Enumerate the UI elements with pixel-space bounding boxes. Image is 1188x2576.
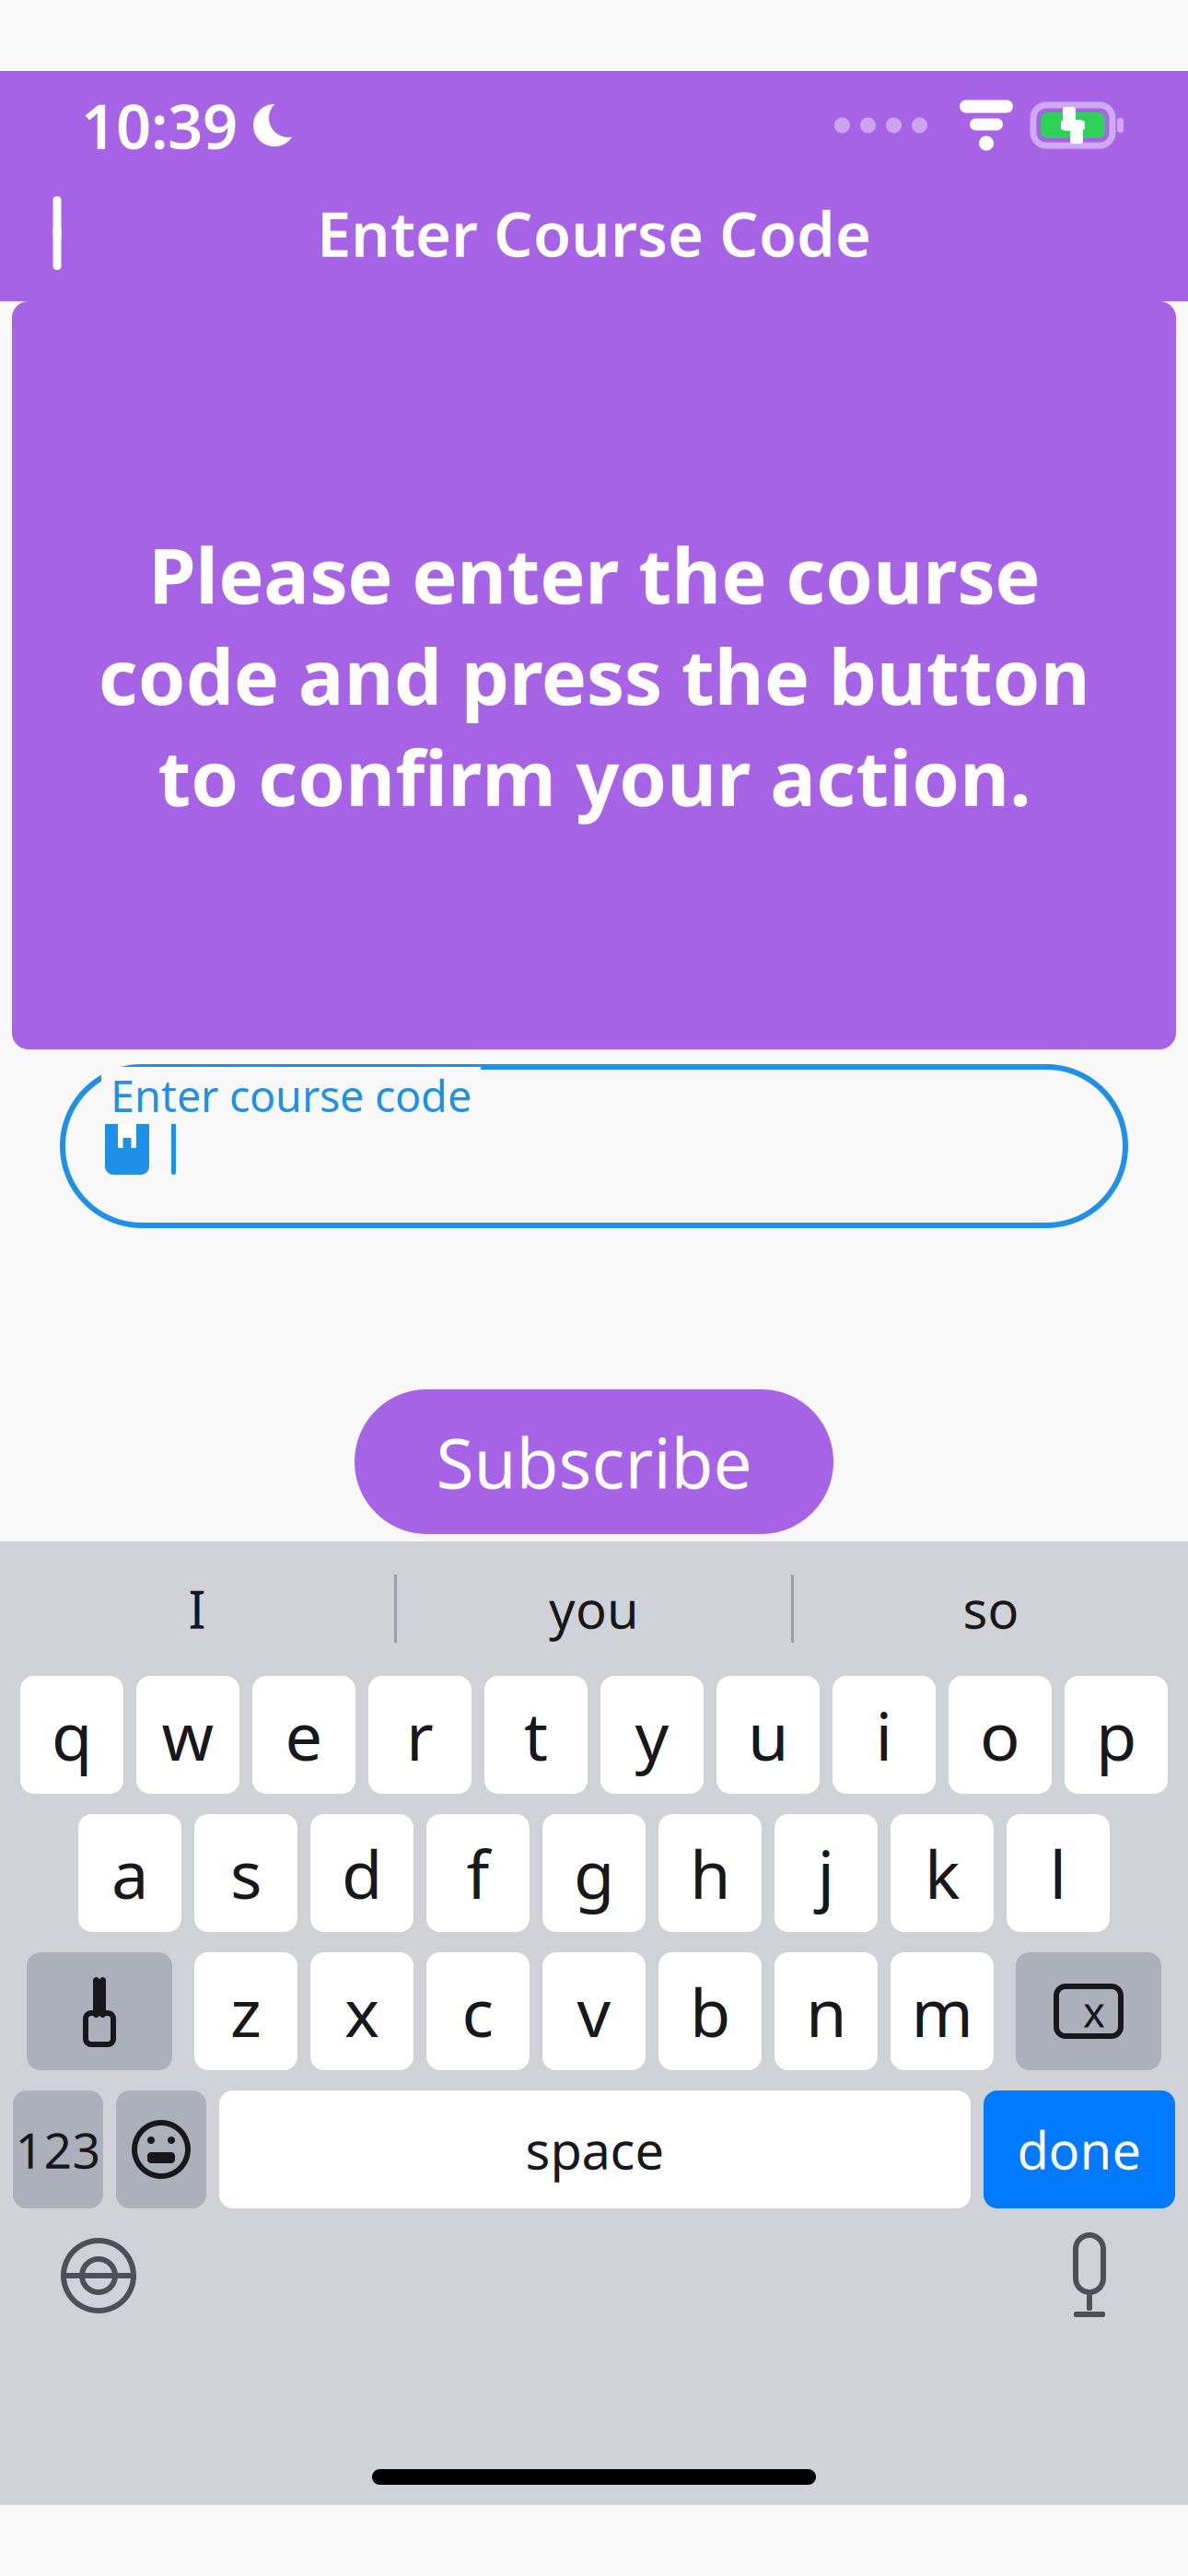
staticText: Please enter the course code and press t… (98, 524, 1090, 827)
button[interactable]: Next keyboard (48, 2225, 149, 2326)
staticText: done (1017, 2115, 1141, 2184)
staticText: k (925, 1829, 960, 1917)
staticText: 10:39 (81, 84, 238, 166)
button[interactable]: Subscribe (355, 1389, 833, 1534)
staticText: m (911, 1967, 973, 2055)
button[interactable]: k (891, 1814, 994, 1932)
button[interactable]: t (484, 1676, 588, 1794)
button[interactable]: w (136, 1676, 239, 1794)
staticText: I (188, 1574, 206, 1643)
staticText: h (690, 1829, 730, 1917)
button[interactable]: c (426, 1952, 530, 2070)
staticText: Enter Course Code (317, 192, 871, 274)
staticText: t (524, 1691, 548, 1779)
staticText: w (162, 1691, 214, 1779)
staticText: v (577, 1967, 611, 2055)
staticText: b (690, 1967, 730, 2055)
button[interactable]: o (949, 1676, 1052, 1794)
button[interactable]: you (397, 1541, 791, 1676)
staticText: Subscribe (436, 1416, 752, 1507)
staticText: i (875, 1691, 893, 1779)
button[interactable]: I (0, 1541, 394, 1676)
staticText: g (574, 1829, 614, 1917)
staticText: y (635, 1691, 669, 1779)
staticText: q (52, 1691, 92, 1779)
button[interactable]: p (1065, 1676, 1168, 1794)
staticText: p (1096, 1691, 1136, 1779)
staticText: r (406, 1691, 434, 1779)
button[interactable]: z (194, 1952, 297, 2070)
button[interactable]: y (600, 1676, 704, 1794)
button[interactable]: i (833, 1676, 936, 1794)
button[interactable]: Shift (27, 1952, 172, 2070)
staticText: s (230, 1829, 262, 1917)
staticText: so (963, 1574, 1019, 1643)
button[interactable]: done (984, 2090, 1175, 2208)
staticText: x (1083, 1984, 1105, 2039)
button[interactable]: x (310, 1952, 413, 2070)
button[interactable]: q (20, 1676, 123, 1794)
button[interactable]: Dictate (1039, 2225, 1140, 2326)
button[interactable]: l (1007, 1814, 1110, 1932)
staticText: space (525, 2115, 664, 2184)
button[interactable]: r (368, 1676, 472, 1794)
staticText: a (111, 1829, 148, 1917)
staticText: x (344, 1967, 379, 2055)
button[interactable]: s (194, 1814, 297, 1932)
button[interactable]: Emoji (116, 2090, 206, 2208)
button[interactable]: n (775, 1952, 878, 2070)
staticText: j (817, 1829, 835, 1917)
button[interactable]: Enter course code (63, 1064, 1125, 1228)
staticText: l (1049, 1829, 1067, 1917)
button[interactable]: so (794, 1541, 1188, 1676)
staticText: you (549, 1574, 639, 1643)
button[interactable]: m (891, 1952, 994, 2070)
button[interactable]: j (775, 1814, 878, 1932)
button[interactable]: g (542, 1814, 646, 1932)
button[interactable]: Back (15, 182, 116, 284)
button[interactable]: 123 (13, 2090, 103, 2208)
staticText: u (748, 1691, 788, 1779)
button[interactable]: h (658, 1814, 762, 1932)
staticText: 123 (15, 2117, 101, 2182)
staticText: Enter course code (111, 1067, 472, 1124)
staticText: f (466, 1829, 489, 1917)
button[interactable]: space (219, 2090, 971, 2208)
button[interactable]: d (310, 1814, 413, 1932)
button[interactable]: Delete (1016, 1952, 1161, 2070)
button[interactable]: f (426, 1814, 530, 1932)
staticText: z (230, 1967, 262, 2055)
button[interactable]: e (252, 1676, 355, 1794)
button[interactable]: u (716, 1676, 820, 1794)
button[interactable]: a (78, 1814, 181, 1932)
staticText: o (980, 1691, 1020, 1779)
staticText: n (806, 1967, 846, 2055)
button[interactable]: v (542, 1952, 646, 2070)
staticText: d (342, 1829, 382, 1917)
staticText: e (285, 1691, 323, 1779)
staticText: c (462, 1967, 494, 2055)
button[interactable]: b (658, 1952, 762, 2070)
